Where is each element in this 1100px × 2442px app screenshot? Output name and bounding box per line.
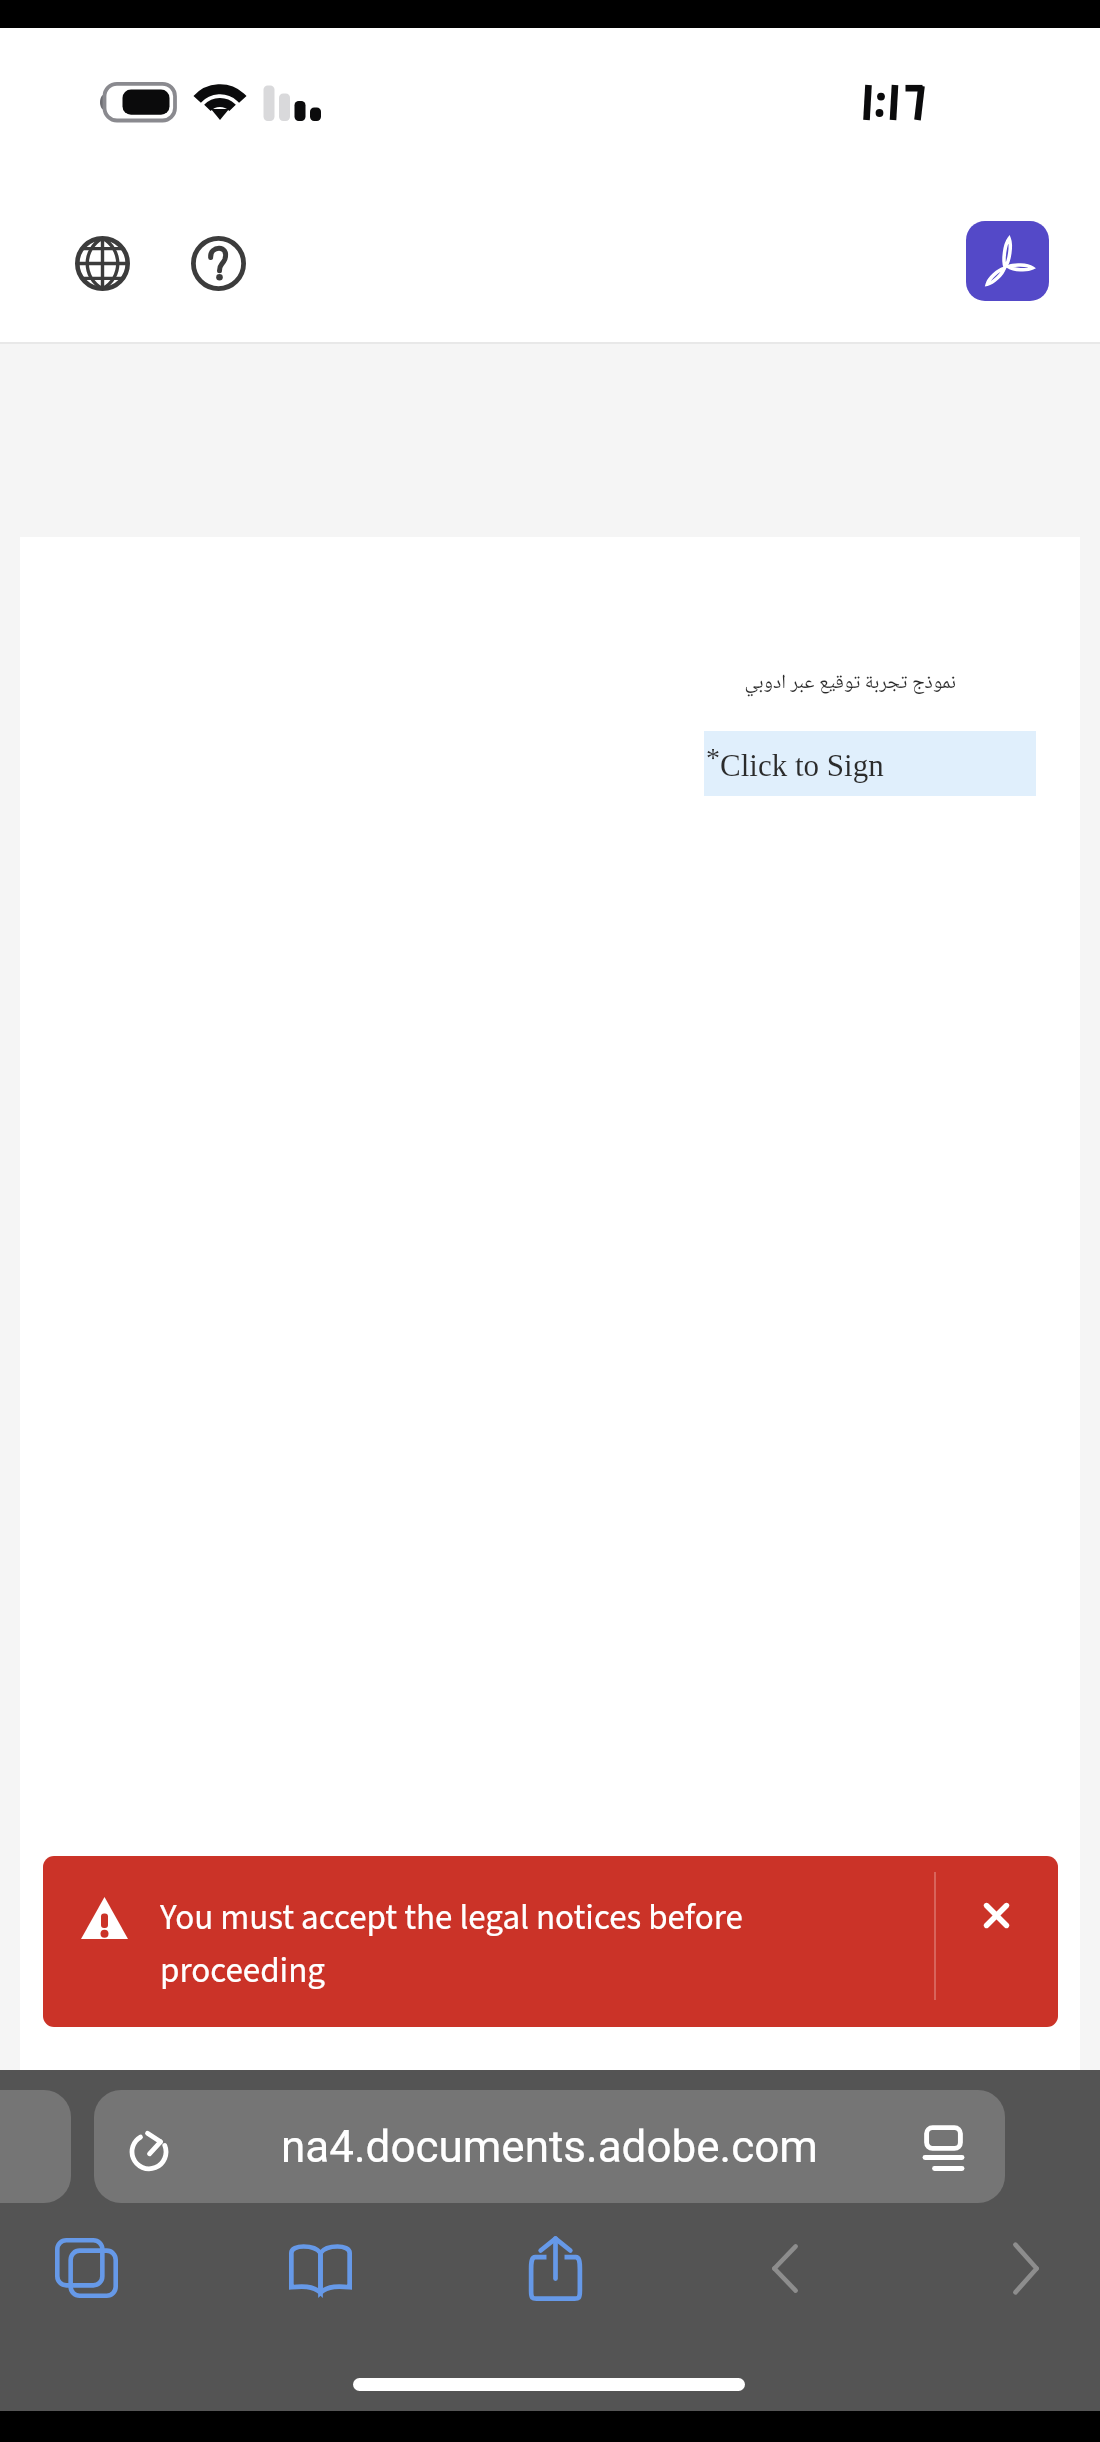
button[interactable]: Reload (109, 2107, 189, 2187)
staticText: na4.documents.adobe.com (281, 2121, 818, 2173)
staticText: Click to Sign (720, 748, 884, 782)
staticText: نموذج تجربة توقيع عبر ادوبي (556, 667, 956, 701)
button[interactable]: Language (58, 219, 146, 307)
button[interactable]: Adobe Acrobat (966, 221, 1049, 301)
button[interactable]: Tabs (31, 2213, 141, 2323)
button[interactable]: na4.documents.adobe.com (94, 2090, 1005, 2203)
button[interactable]: * (704, 731, 1036, 796)
button[interactable]: Close (956, 1875, 1036, 1955)
button[interactable]: Bookmarks (265, 2213, 375, 2323)
staticText: * (706, 742, 720, 773)
button[interactable]: Share (500, 2213, 610, 2323)
button[interactable]: Back (730, 2213, 840, 2323)
staticText: You must accept the legal notices before… (160, 1893, 760, 1996)
button[interactable]: Page settings (903, 2107, 983, 2187)
button[interactable]: Forward (971, 2213, 1081, 2323)
button[interactable]: Help (174, 219, 262, 307)
